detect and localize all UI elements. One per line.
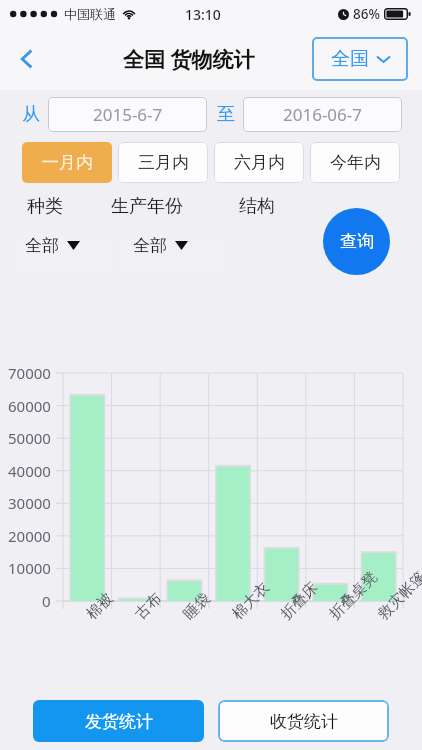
staticText: 种类	[27, 195, 63, 218]
staticText: 全国	[331, 47, 369, 71]
button[interactable]: 2016-06-7	[243, 97, 402, 132]
staticText: 六月内	[234, 152, 285, 173]
staticText: 2015-6-7	[93, 103, 163, 126]
staticText: 2016-06-7	[283, 103, 363, 126]
button[interactable]: 查询	[323, 208, 390, 275]
button[interactable]: 收货统计	[218, 700, 389, 742]
staticText: 至	[217, 103, 235, 126]
button[interactable]: 六月内	[214, 142, 304, 183]
staticText: 收货统计	[270, 711, 338, 732]
button[interactable]: 2015-6-7	[48, 97, 207, 132]
staticText: 生产年份	[111, 195, 183, 218]
staticText: 86%	[353, 5, 380, 23]
staticText: 全部	[25, 235, 59, 256]
button[interactable]: 三月内	[118, 142, 208, 183]
button[interactable]: 全部	[120, 234, 224, 278]
staticText: 三月内	[138, 152, 189, 173]
button[interactable]: 发货统计	[33, 700, 204, 742]
button[interactable]: 全国	[312, 37, 408, 81]
button[interactable]: 今年内	[310, 142, 400, 183]
button[interactable]: Back	[0, 28, 54, 90]
staticText: 中国联通	[64, 6, 116, 22]
staticText: 13:10	[185, 5, 221, 24]
staticText: 从	[22, 103, 40, 126]
button[interactable]: 一月内	[22, 142, 112, 183]
staticText: 全国 货物统计	[123, 45, 255, 74]
staticText: 发货统计	[85, 711, 153, 732]
staticText: 一月内	[42, 152, 93, 173]
staticText: 今年内	[330, 152, 381, 173]
staticText: 结构	[239, 195, 275, 218]
staticText: 全部	[133, 235, 167, 256]
staticText: 查询	[340, 231, 374, 252]
button[interactable]: 全部	[12, 234, 116, 278]
